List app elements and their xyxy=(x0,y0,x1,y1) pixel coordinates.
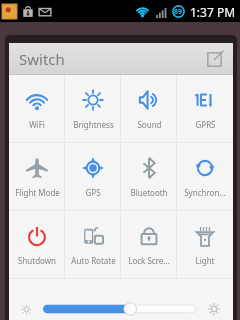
button[interactable]: Lock Scre... xyxy=(121,211,177,278)
button[interactable]: Auto Rotate xyxy=(65,211,121,278)
staticText: WiFi xyxy=(29,119,45,130)
staticText: Light xyxy=(195,255,215,266)
staticText: Auto Rotate xyxy=(71,255,116,266)
button[interactable]: Bluetooth xyxy=(121,143,177,210)
staticText: 89 xyxy=(174,7,183,17)
button[interactable]: Brightness xyxy=(65,75,121,142)
button[interactable]: Light xyxy=(177,211,233,278)
button[interactable]: Edit xyxy=(206,50,224,68)
staticText: GPS xyxy=(85,187,101,198)
button[interactable] xyxy=(43,301,196,317)
staticText: 1:37 PM xyxy=(190,4,236,20)
staticText: Brightness xyxy=(73,119,114,130)
staticText: Synchron... xyxy=(184,187,226,198)
staticText: GPRS xyxy=(195,119,216,130)
staticText: Lock Scre... xyxy=(128,255,170,266)
button[interactable]: Flight Mode xyxy=(9,143,65,210)
staticText: Flight Mode xyxy=(15,187,60,198)
button[interactable]: GPRS xyxy=(177,75,233,142)
staticText: Bluetooth xyxy=(130,187,168,198)
button[interactable]: WiFi xyxy=(9,75,65,142)
button[interactable]: GPS xyxy=(65,143,121,210)
staticText: Sound xyxy=(137,119,162,130)
button[interactable]: Shutdown xyxy=(9,211,65,278)
button[interactable]: Synchron... xyxy=(177,143,233,210)
staticText: Shutdown xyxy=(18,255,56,266)
staticText: Switch xyxy=(19,49,65,69)
button[interactable]: Sound xyxy=(121,75,177,142)
